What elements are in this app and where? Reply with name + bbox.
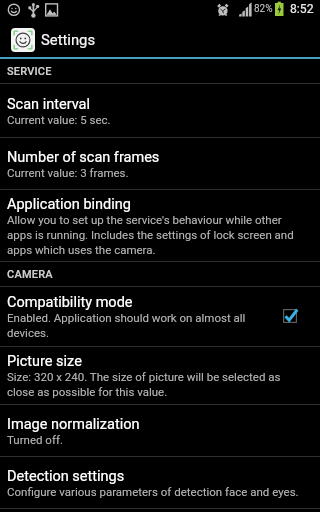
staticText: Detection settings bbox=[7, 468, 125, 485]
button[interactable]: Application binding bbox=[0, 190, 320, 262]
staticText: CAMERA bbox=[7, 268, 53, 281]
staticText: Allow you to set up the service's behavi… bbox=[7, 213, 303, 256]
staticText: Settings bbox=[41, 31, 96, 48]
button[interactable]: Image normalization bbox=[0, 405, 320, 457]
staticText: Current value: 5 sec. bbox=[7, 113, 111, 126]
staticText: SERVICE bbox=[7, 65, 52, 78]
button[interactable]: Detection settings bbox=[0, 457, 320, 509]
staticText: Image normalization bbox=[7, 416, 140, 433]
staticText: Size: 320 x 240. The size of picture wil… bbox=[7, 370, 303, 398]
staticText: Scan interval bbox=[7, 96, 91, 113]
button[interactable]: Picture size bbox=[0, 347, 320, 405]
staticText: Enabled. Application should work on almo… bbox=[7, 311, 281, 339]
staticText: Application binding bbox=[7, 196, 131, 213]
staticText: Current value: 3 frames. bbox=[7, 166, 129, 179]
staticText: 8:52 bbox=[290, 2, 314, 16]
button[interactable]: Compatibility mode bbox=[0, 287, 320, 347]
button[interactable]: Settings bbox=[11, 22, 320, 57]
button[interactable]: Scan interval bbox=[0, 84, 320, 138]
staticText: Number of scan frames bbox=[7, 149, 160, 166]
staticText: Compatibility mode bbox=[7, 294, 133, 311]
staticText: Picture size bbox=[7, 353, 82, 370]
button[interactable]: Number of scan frames bbox=[0, 138, 320, 190]
staticText: 82% bbox=[254, 3, 273, 15]
staticText: Configure various parameters of detectio… bbox=[7, 485, 299, 498]
staticText: Turned off. bbox=[7, 433, 63, 446]
